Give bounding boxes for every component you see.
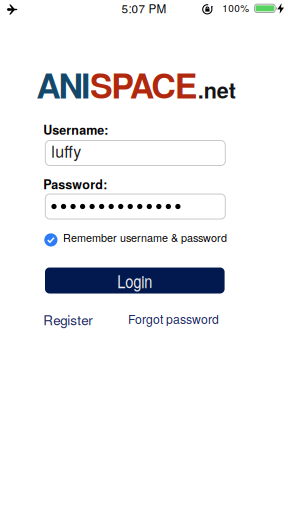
staticText: SPACE bbox=[90, 60, 198, 109]
staticText: Remember username & password bbox=[63, 230, 227, 245]
staticText: luffy bbox=[51, 139, 81, 162]
staticText: Password: bbox=[43, 175, 107, 193]
button[interactable]: Register bbox=[43, 310, 92, 329]
button[interactable] bbox=[45, 194, 225, 219]
button[interactable]: luffy bbox=[45, 140, 225, 165]
staticText: Forgot password bbox=[128, 310, 219, 327]
staticText: 100% bbox=[222, 0, 249, 15]
button[interactable]: Remember username & password bbox=[44, 232, 227, 248]
staticText: Login bbox=[117, 269, 152, 293]
staticText: .net bbox=[198, 74, 236, 105]
staticText: Username: bbox=[43, 121, 108, 139]
staticText: Register bbox=[43, 310, 92, 329]
button[interactable]: Forgot password bbox=[128, 310, 219, 327]
staticText: 5:07 PM bbox=[121, 0, 166, 16]
staticText: ANI bbox=[36, 60, 90, 109]
button[interactable]: Login bbox=[45, 267, 225, 293]
